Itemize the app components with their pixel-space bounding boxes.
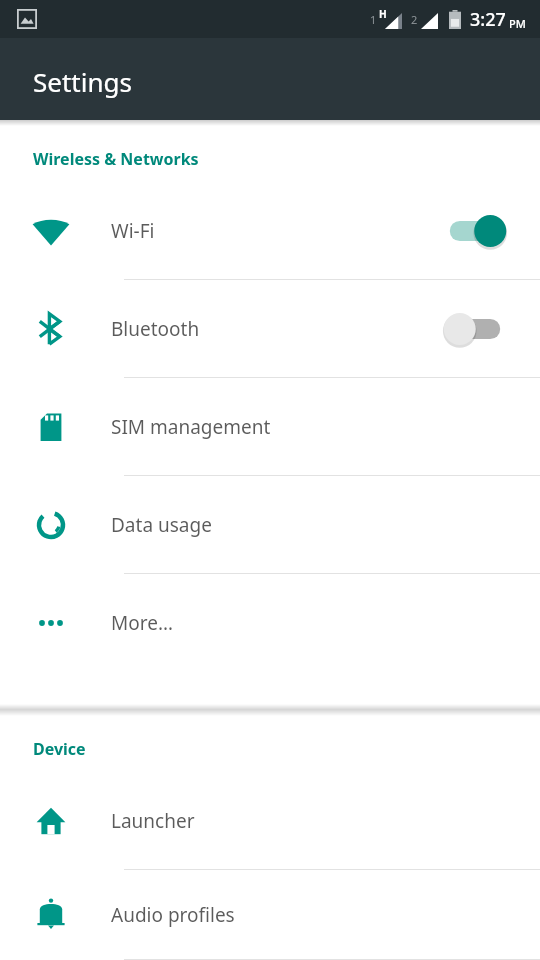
staticText: SIM management: [111, 414, 271, 440]
staticText: H: [379, 7, 387, 21]
staticText: 3:27: [470, 7, 506, 32]
button[interactable]: More: [0, 574, 540, 672]
other: Bluetooth: [31, 309, 71, 349]
button[interactable]: Wi-Fi: [0, 182, 540, 280]
staticText: 1: [370, 12, 377, 27]
other: Audio profiles: [31, 895, 71, 935]
other: Data usage: [31, 505, 71, 545]
button[interactable]: SIM management: [0, 378, 540, 476]
staticText: Data usage: [111, 512, 212, 538]
button[interactable]: [440, 213, 510, 249]
staticText: Bluetooth: [111, 316, 200, 342]
other: Wi-Fi: [31, 211, 71, 251]
button[interactable]: Data usage: [0, 476, 540, 574]
staticText: Audio profiles: [111, 902, 235, 928]
staticText: More…: [111, 610, 173, 636]
button[interactable]: Bluetooth: [0, 280, 540, 378]
other: More: [31, 603, 71, 643]
other: SIM management: [31, 407, 71, 447]
staticText: 2: [411, 12, 418, 27]
staticText: Wi-Fi: [111, 218, 155, 244]
other: Launcher: [31, 801, 71, 841]
staticText: Launcher: [111, 808, 195, 834]
button[interactable]: Audio profiles: [0, 870, 540, 960]
staticText: PM: [509, 16, 526, 31]
staticText: Wireless & Networks: [33, 148, 199, 170]
staticText: Device: [33, 738, 86, 760]
button[interactable]: Launcher: [0, 772, 540, 870]
button[interactable]: [440, 311, 510, 347]
staticText: Settings: [33, 64, 132, 99]
